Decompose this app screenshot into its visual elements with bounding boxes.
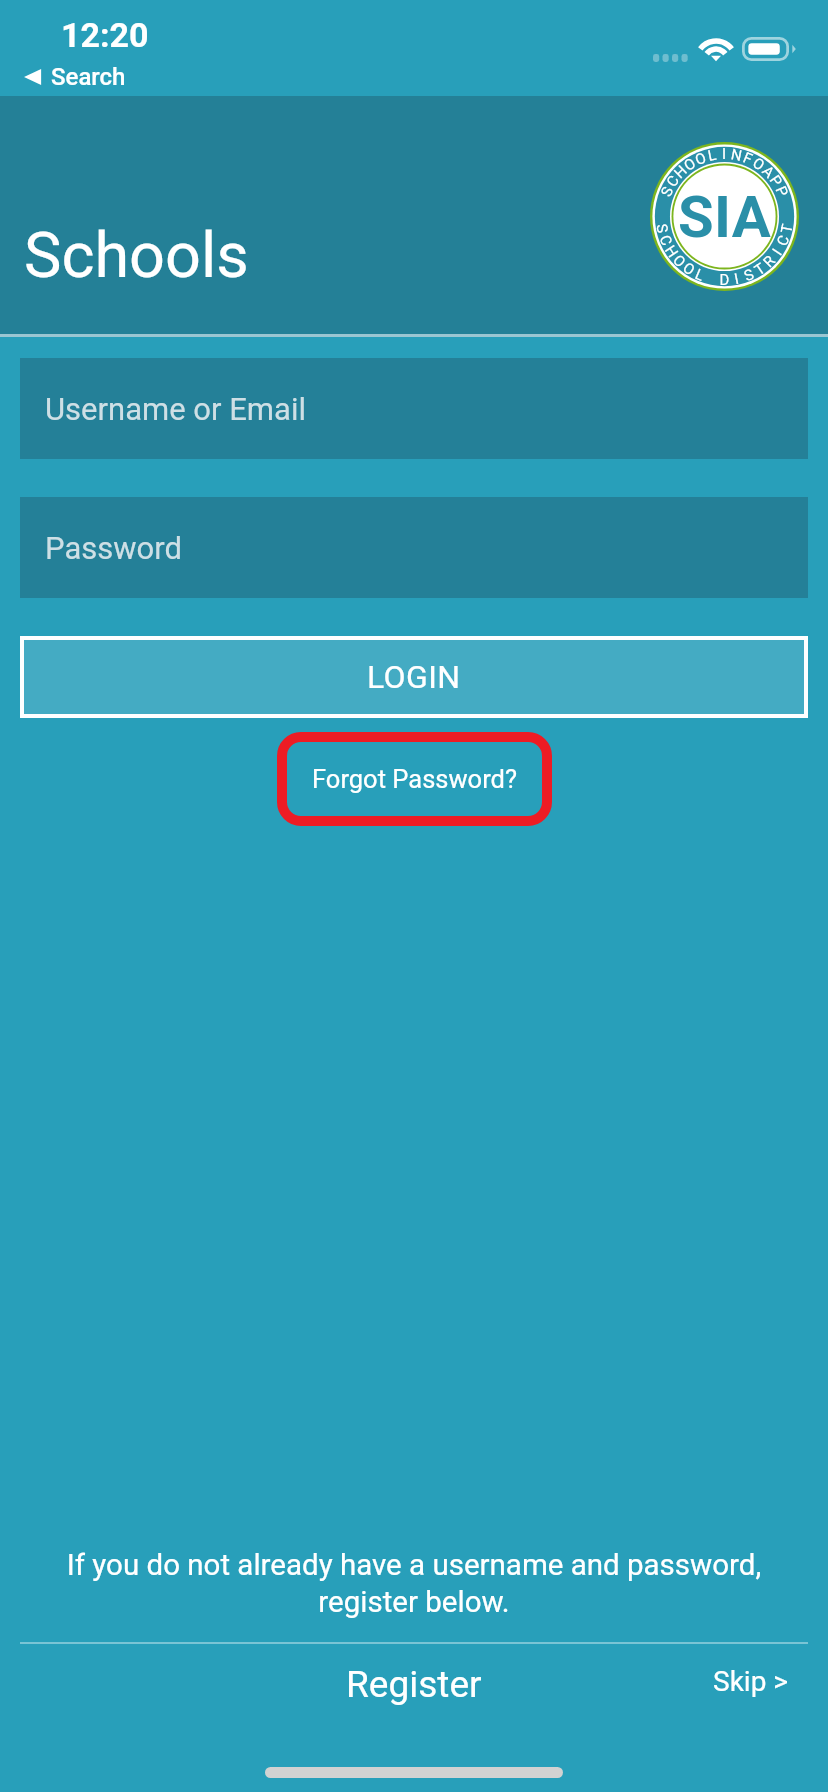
staticText: Register xyxy=(346,1663,482,1706)
staticText: Forgot Password? xyxy=(312,764,517,794)
button[interactable]: Register xyxy=(328,1657,500,1712)
staticText: Skip > xyxy=(713,1665,788,1698)
staticText: 12:20 xyxy=(61,15,149,55)
staticText: SIA xyxy=(678,183,772,251)
button[interactable]: Back to Search xyxy=(18,57,136,97)
staticText: Schools xyxy=(24,219,249,293)
staticText: Search xyxy=(51,63,126,91)
button[interactable]: Skip > xyxy=(707,1659,794,1704)
staticText: Username or Email xyxy=(45,391,306,427)
staticText: If you do not already have a username an… xyxy=(20,1548,808,1619)
button[interactable]: Forgot Password? xyxy=(277,732,552,826)
staticText: LOGIN xyxy=(367,658,461,696)
staticText: Password xyxy=(45,530,182,566)
button[interactable]: LOGIN xyxy=(24,640,804,714)
button[interactable]: Password xyxy=(20,497,808,598)
button[interactable]: Username or Email xyxy=(20,358,808,459)
